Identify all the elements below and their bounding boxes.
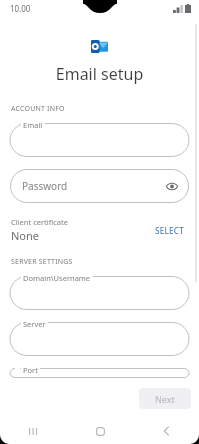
staticText: Next [155,393,175,405]
button[interactable]: Back [133,418,199,444]
button[interactable]: Recents [0,418,67,444]
button[interactable]: Client certificate [11,217,188,243]
button[interactable]: Email [10,123,189,157]
button[interactable]: Show password [164,178,180,194]
button[interactable]: Password [10,169,189,203]
staticText: Client certificate [11,217,68,227]
button[interactable]: Server [10,322,189,356]
button[interactable]: Domain\Username [10,276,189,310]
staticText: Password [22,179,68,193]
button[interactable]: Next [139,388,191,409]
staticText: Server [23,319,46,329]
staticText: 10.00 [10,3,31,14]
staticText: Email setup [0,63,199,85]
button[interactable]: Port [10,368,189,378]
staticText: Domain\Username [23,273,91,283]
staticText: SERVER SETTINGS [11,257,199,267]
staticText: SELECT [155,225,184,236]
button[interactable]: Home [67,418,133,444]
staticText: None [11,228,40,243]
staticText: ACCOUNT INFO [11,104,199,114]
button[interactable]: SELECT [151,222,188,239]
staticText: Email [23,120,43,130]
staticText: Port [23,365,38,375]
